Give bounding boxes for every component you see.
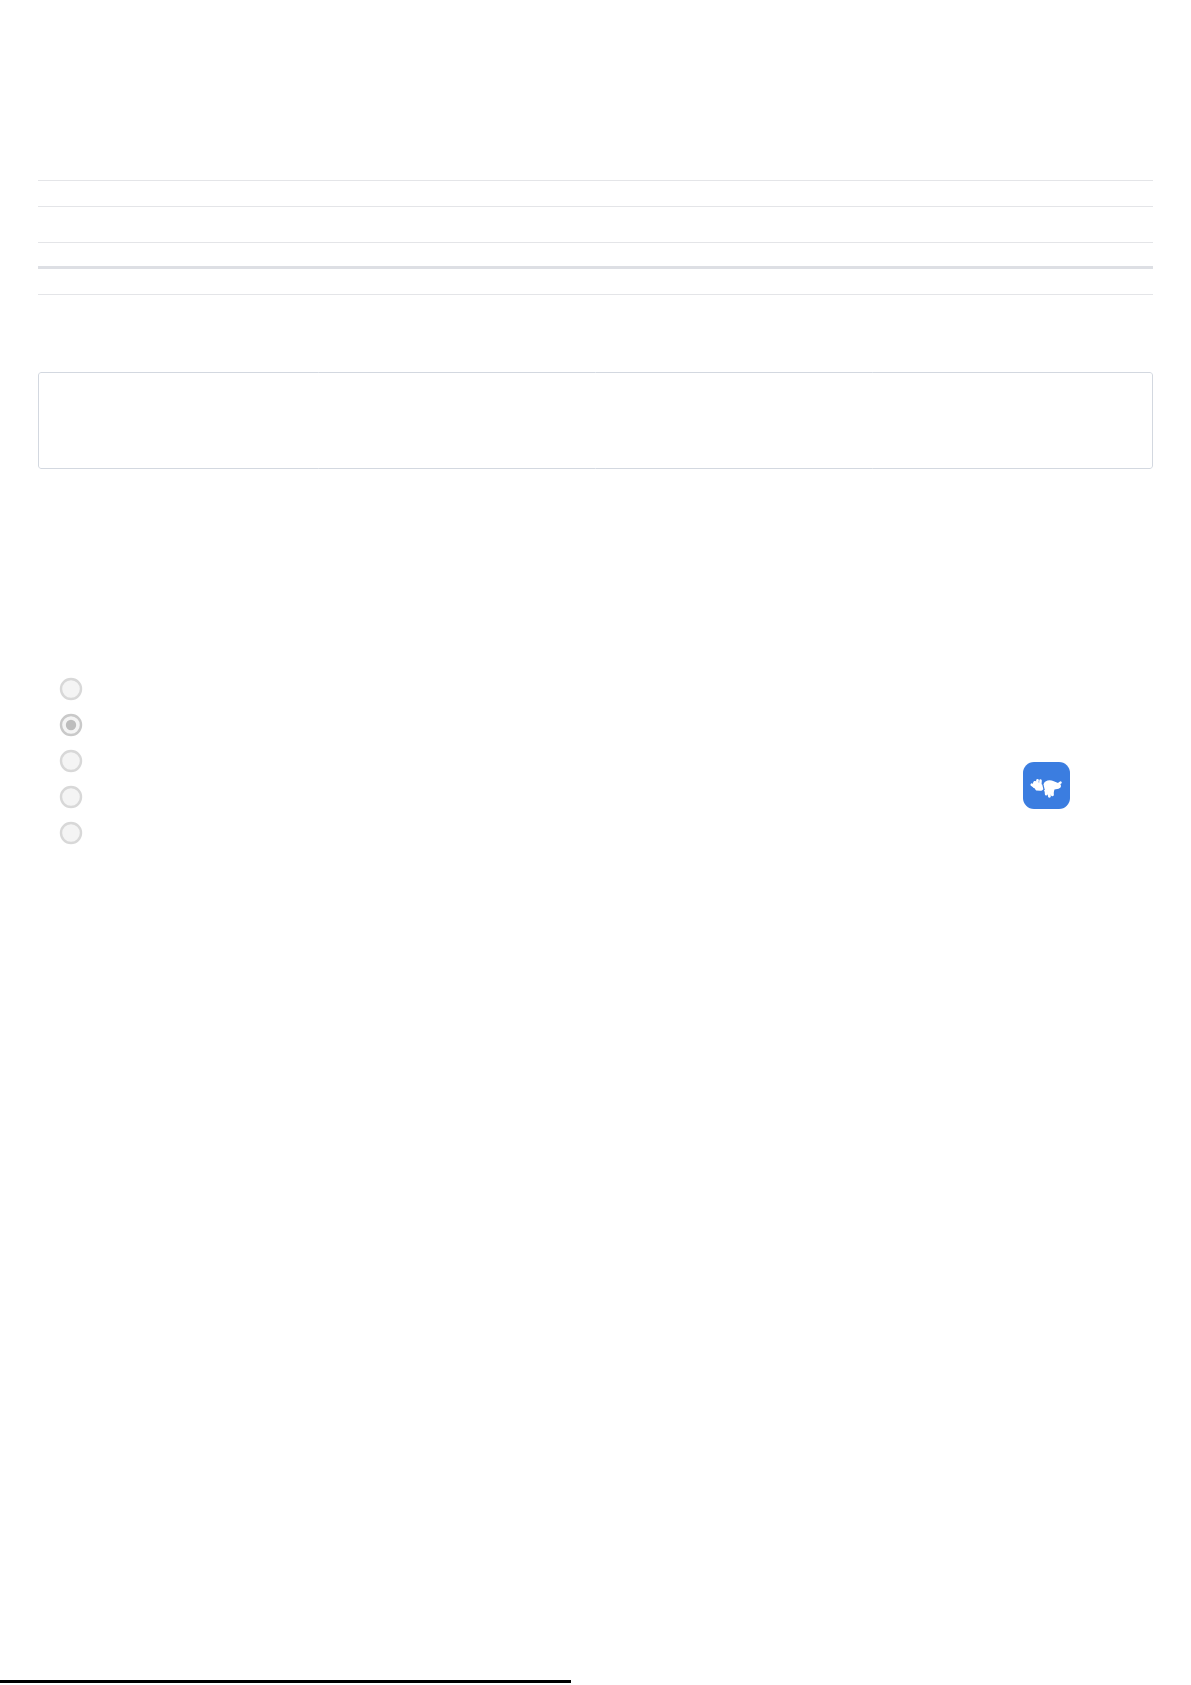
- button[interactable]: Option 3: [0, 743, 1191, 779]
- button[interactable]: Option 2: [0, 707, 1191, 743]
- button[interactable]: [38, 372, 1153, 469]
- button[interactable]: Option 4: [0, 779, 1191, 815]
- button[interactable]: Sign language: [1023, 762, 1070, 809]
